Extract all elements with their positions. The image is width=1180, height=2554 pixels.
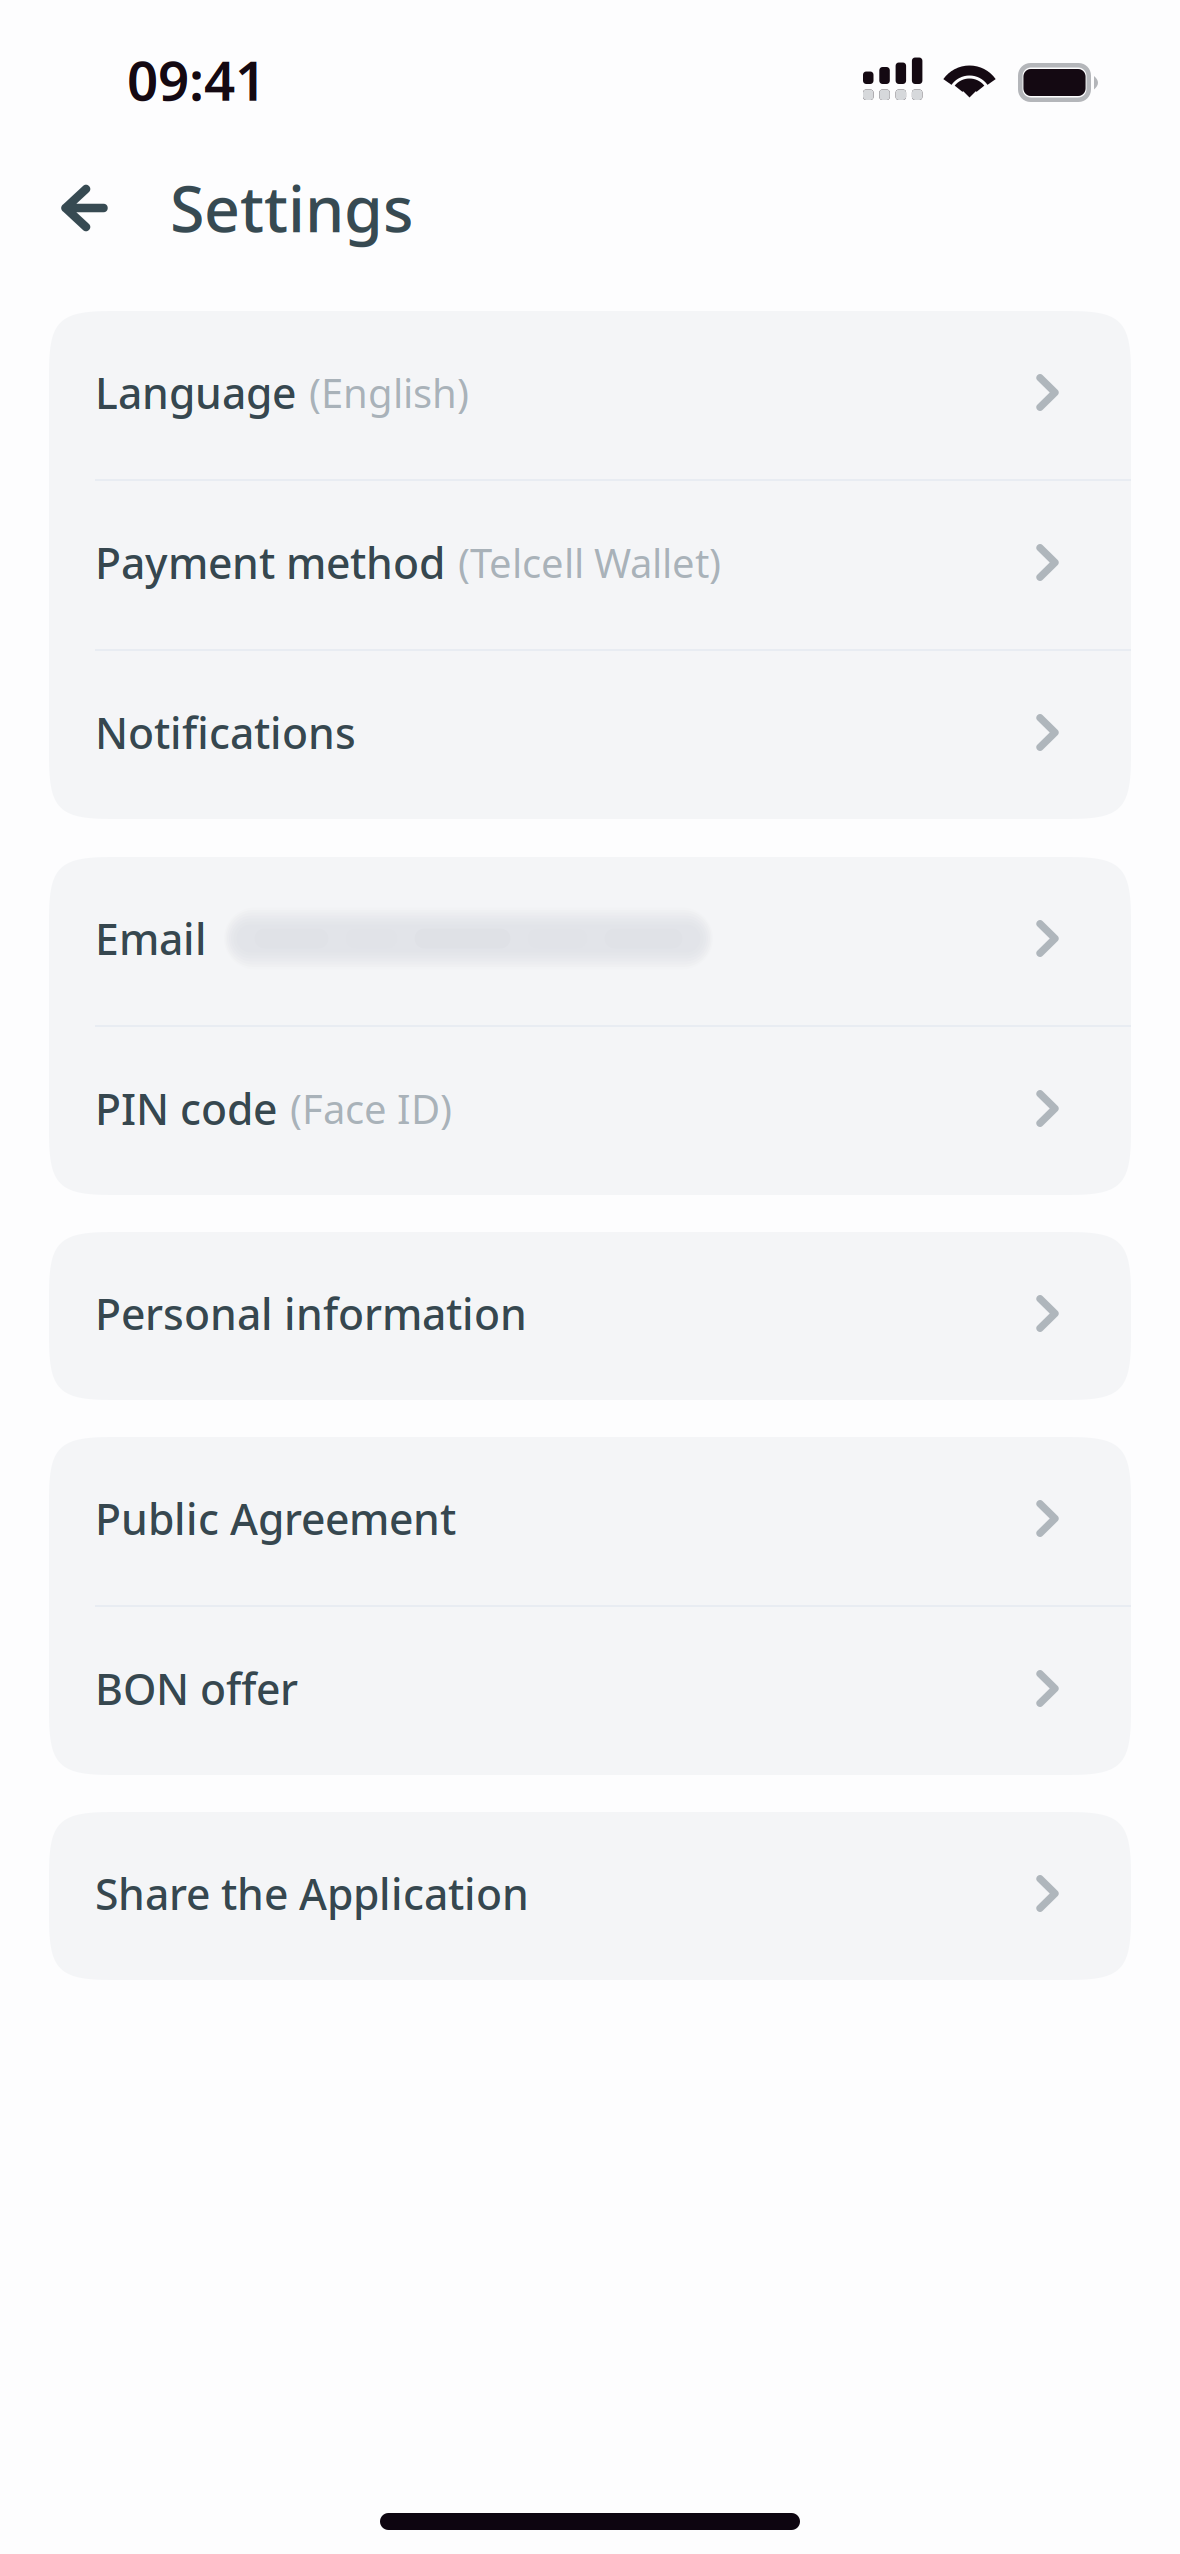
staticText: PIN code: [95, 1080, 277, 1137]
staticText: Payment method: [95, 534, 445, 591]
staticText: Notifications: [95, 704, 356, 761]
staticText: Share the Application: [95, 1865, 529, 1922]
staticText: BON offer: [95, 1660, 298, 1717]
staticText: Personal information: [95, 1285, 527, 1342]
button[interactable]: Language: [49, 311, 1131, 479]
staticText: Settings: [170, 166, 413, 250]
button[interactable]: Share the Application: [49, 1812, 1131, 1980]
button[interactable]: BON offer: [49, 1607, 1131, 1775]
button[interactable]: Payment method: [49, 481, 1131, 649]
button[interactable]: Notifications: [49, 651, 1131, 819]
staticText: Public Agreement: [95, 1490, 456, 1547]
button[interactable]: Email: [49, 857, 1131, 1025]
button[interactable]: Personal information: [49, 1232, 1131, 1400]
button[interactable]: Public Agreement: [49, 1437, 1131, 1605]
staticText: (Face ID): [290, 1082, 452, 1135]
staticText: (Telcell Wallet): [458, 536, 721, 589]
staticText: 09:41: [127, 43, 266, 116]
staticText: Email: [95, 910, 207, 967]
staticText: Language: [95, 364, 296, 421]
staticText: (English): [309, 366, 469, 419]
button[interactable]: PIN code: [49, 1027, 1131, 1195]
button[interactable]: Back: [45, 169, 124, 247]
